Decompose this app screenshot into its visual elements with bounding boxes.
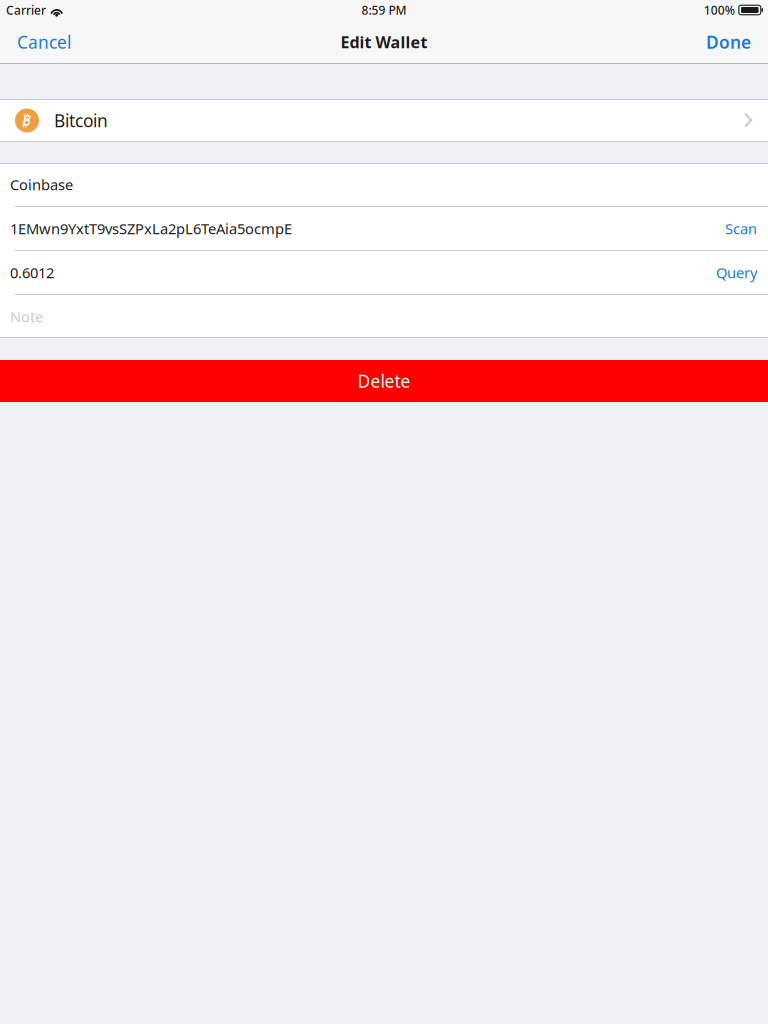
staticText: Note: [10, 307, 43, 326]
staticText: 100%: [704, 2, 735, 18]
staticText: Coinbase: [10, 175, 73, 194]
staticText: Query: [716, 263, 757, 282]
staticText: Carrier: [6, 2, 46, 18]
staticText: 1EMwn9YxtT9vsSZPxLa2pL6TeAia5ocmpE: [10, 219, 292, 238]
staticText: Scan: [725, 219, 757, 238]
staticText: Bitcoin: [54, 109, 108, 132]
staticText: Cancel: [17, 30, 71, 53]
button[interactable]: Note: [0, 295, 768, 338]
button[interactable]: Scan: [719, 207, 763, 250]
staticText: Delete: [357, 369, 410, 392]
staticText: 0.6012: [10, 263, 54, 282]
staticText: 8:59 PM: [361, 2, 406, 18]
staticText: Edit Wallet: [340, 31, 427, 53]
button[interactable]: Bitcoin: [0, 99, 768, 142]
button[interactable]: Query: [710, 251, 763, 294]
button[interactable]: Done: [698, 20, 759, 64]
button[interactable]: Delete: [0, 360, 768, 402]
button[interactable]: Coinbase: [0, 163, 768, 206]
button[interactable]: Cancel: [9, 20, 79, 64]
button[interactable]: 1EMwn9YxtT9vsSZPxLa2pL6TeAia5ocmpE: [0, 207, 719, 250]
button[interactable]: 0.6012: [0, 251, 710, 294]
staticText: Done: [706, 30, 751, 53]
